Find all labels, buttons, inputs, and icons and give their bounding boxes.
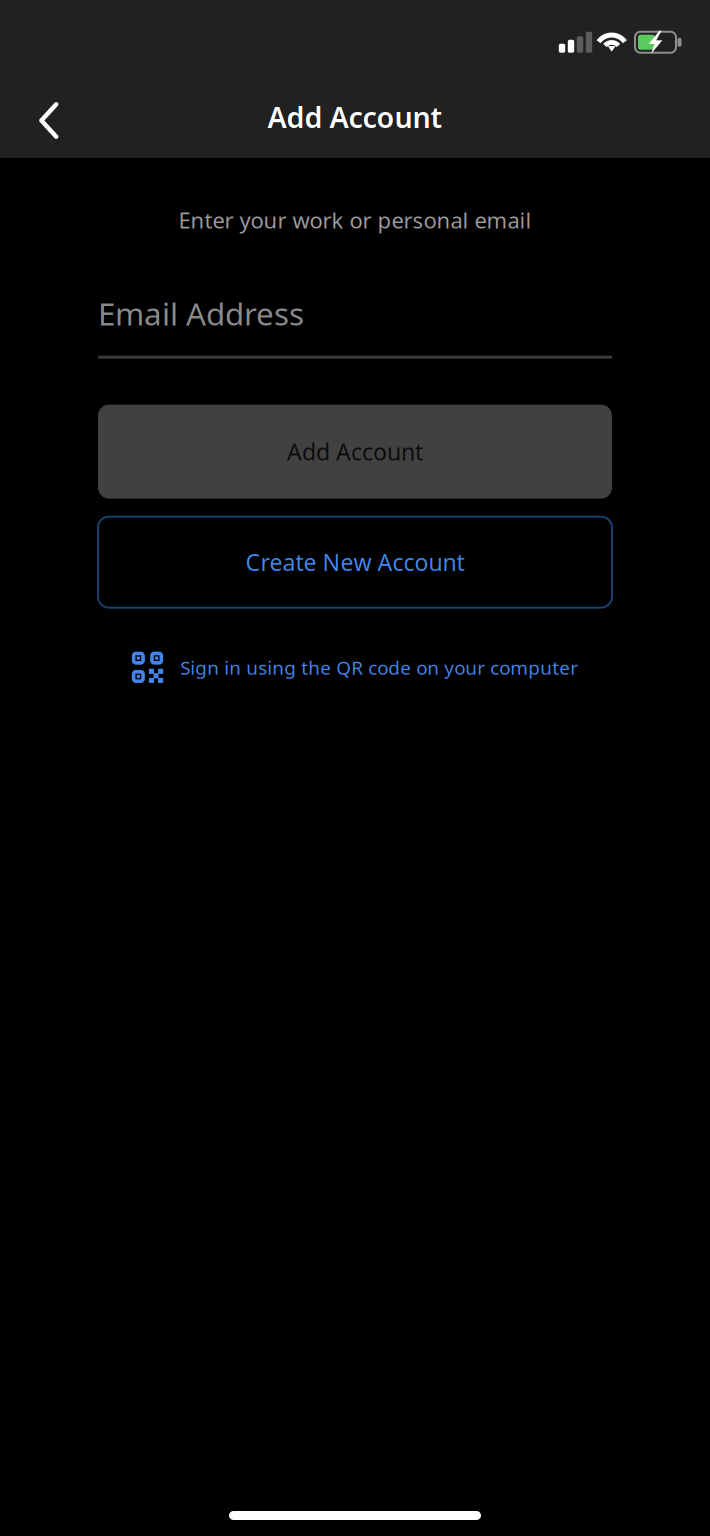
button[interactable]: Add Account	[98, 405, 612, 499]
staticText: Add Account	[287, 436, 423, 467]
button[interactable]: Back	[0, 82, 78, 151]
staticText: Sign in using the QR code on your comput…	[180, 654, 578, 680]
staticText: Add Account	[267, 97, 442, 136]
button[interactable]: Create New Account	[98, 517, 612, 608]
staticText: Enter your work or personal email	[178, 205, 531, 235]
staticText: Email Address	[98, 292, 304, 335]
button[interactable]: Sign in using the QR code on your comput…	[132, 652, 578, 683]
staticText: Create New Account	[245, 546, 464, 578]
